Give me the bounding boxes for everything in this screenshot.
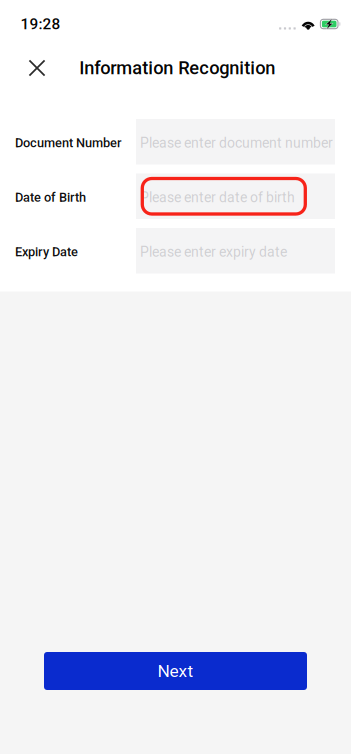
staticText: Date of Birth: [15, 190, 86, 205]
staticText: Please enter document number: [140, 135, 333, 151]
staticText: Document Number: [15, 135, 122, 150]
button[interactable]: Close: [17, 48, 57, 88]
button[interactable]: Expiry Date: [0, 228, 351, 273]
staticText: Next: [157, 661, 193, 681]
button[interactable]: Date of Birth: [0, 173, 351, 219]
button[interactable]: Next: [0, 652, 351, 690]
staticText: Expiry Date: [15, 244, 78, 259]
button[interactable]: Document Number: [0, 119, 351, 164]
staticText: Please enter expiry date: [140, 244, 287, 260]
staticText: Information Recognition: [79, 57, 275, 79]
staticText: Please enter date of birth: [140, 189, 295, 205]
staticText: 19:28: [20, 15, 60, 33]
